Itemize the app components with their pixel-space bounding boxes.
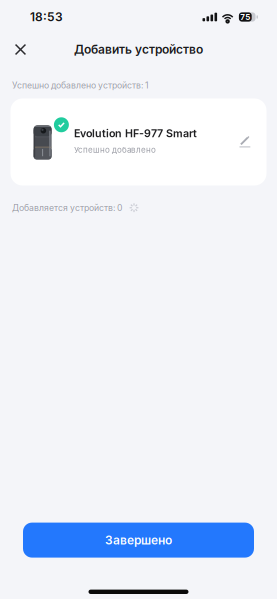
staticText: 75	[240, 12, 250, 22]
staticText: Evolution HF-977 Smart	[74, 127, 197, 140]
staticText: Успешно добавлено устройств: 1	[12, 80, 149, 90]
staticText: Завершено	[105, 533, 172, 547]
staticText: Добавить устройство	[74, 42, 203, 57]
staticText: Добавляется устройств: 0	[12, 202, 122, 213]
staticText: 18:53	[30, 10, 63, 24]
button[interactable]: Edit	[234, 130, 256, 152]
staticText: Успешно добавлено	[74, 145, 156, 155]
button[interactable]: Завершено	[23, 523, 254, 558]
button[interactable]: Close	[6, 35, 35, 63]
